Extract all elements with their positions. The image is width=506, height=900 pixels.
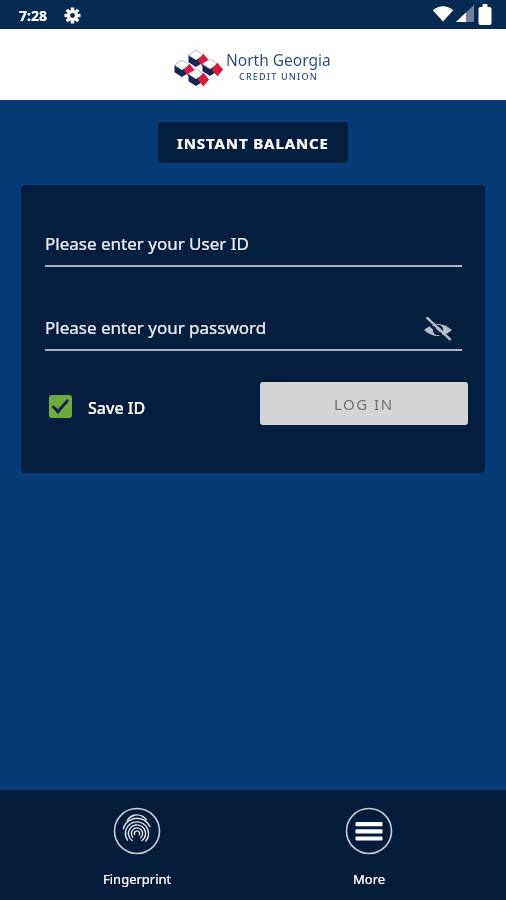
button[interactable]: Please enter your password <box>45 316 405 339</box>
button[interactable] <box>49 395 72 418</box>
staticText: Fingerprint <box>103 870 172 888</box>
staticText: Please enter your User ID <box>45 232 249 255</box>
staticText: North Georgia <box>226 49 331 70</box>
button[interactable] <box>420 315 456 345</box>
staticText: INSTANT BALANCE <box>177 133 329 153</box>
staticText: LOG IN <box>334 394 394 414</box>
staticText: 7:28 <box>19 6 47 25</box>
staticText: CREDIT UNION <box>239 70 318 82</box>
button[interactable]: More <box>324 796 414 894</box>
staticText: Save ID <box>88 397 146 419</box>
button[interactable]: INSTANT BALANCE <box>158 122 348 163</box>
button[interactable]: Save ID <box>88 397 146 419</box>
staticText: More <box>353 870 386 888</box>
staticText: Please enter your password <box>45 316 267 339</box>
button[interactable]: Please enter your User ID <box>45 232 462 255</box>
button[interactable]: Fingerprint <box>92 796 182 894</box>
button[interactable]: LOG IN <box>260 382 468 425</box>
